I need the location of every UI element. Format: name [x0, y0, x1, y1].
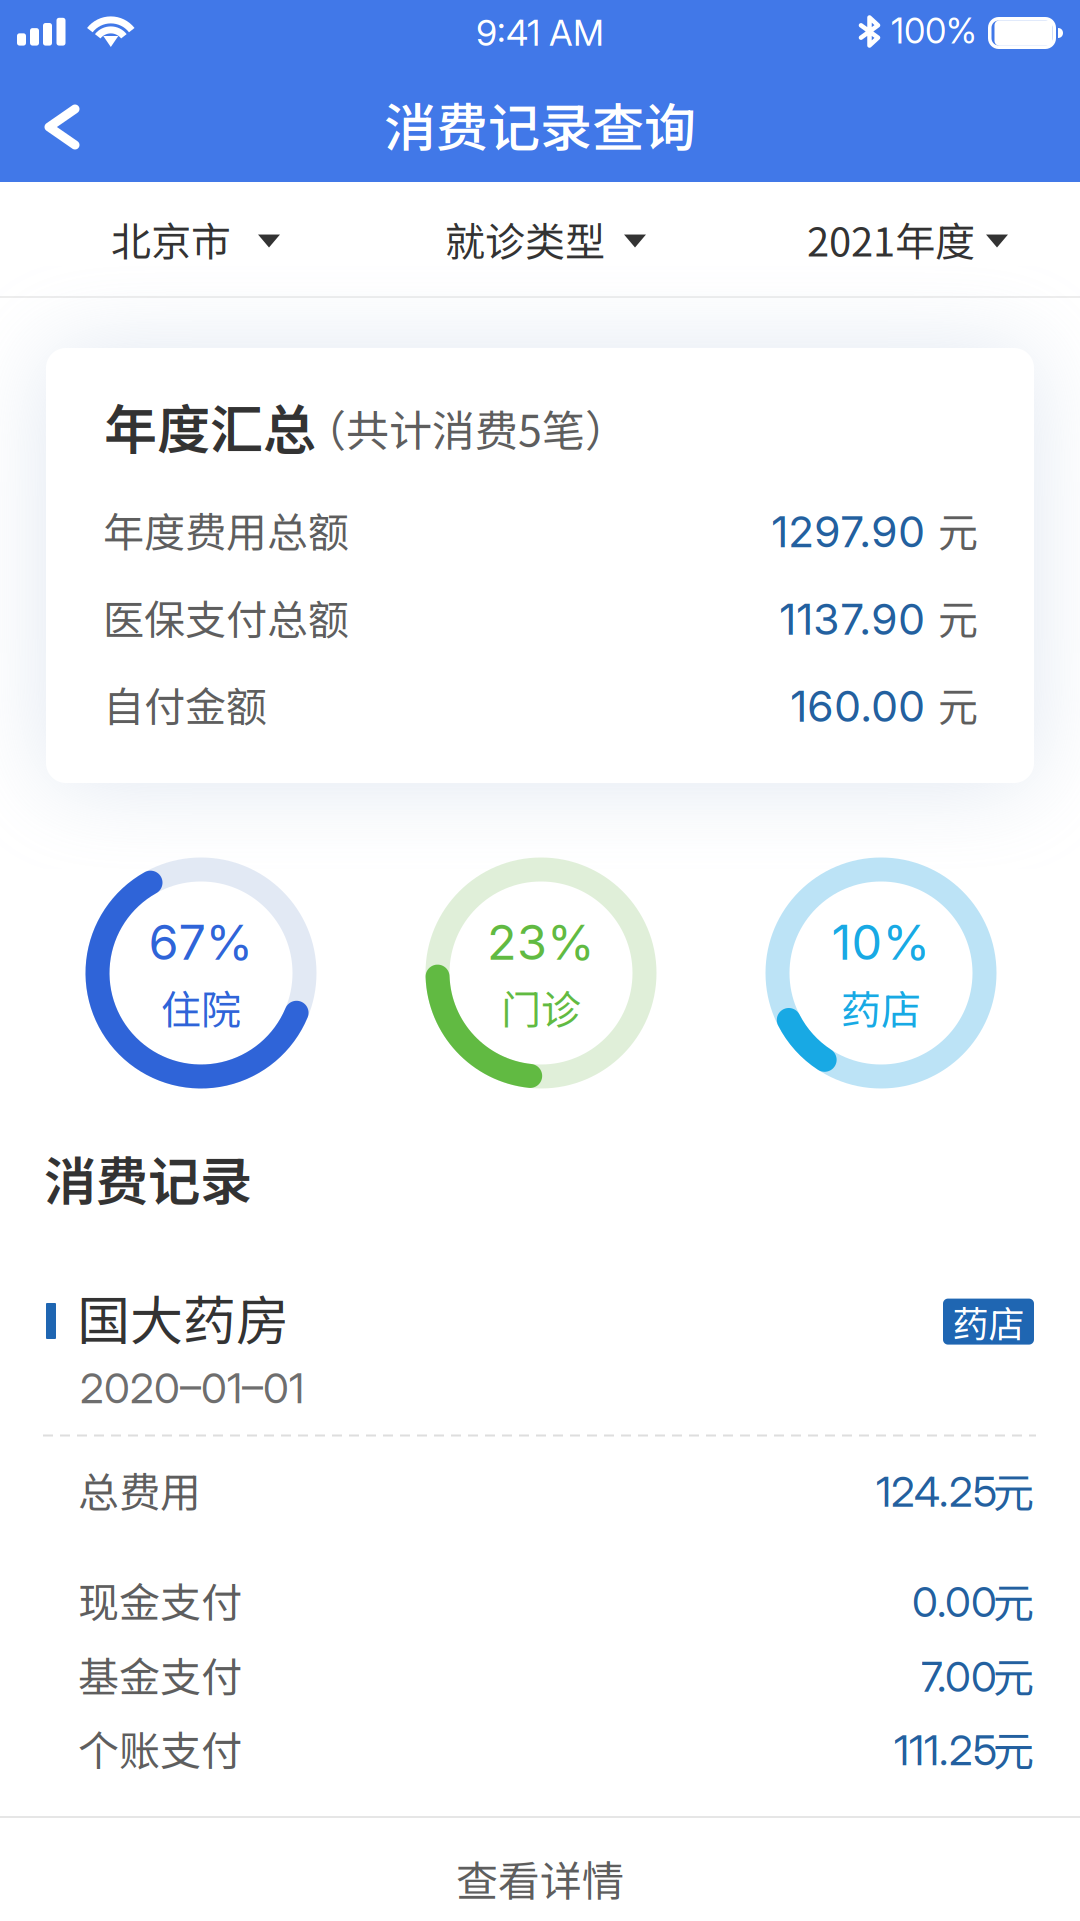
staticText: 元 [938, 588, 978, 646]
staticText: 元 [938, 675, 978, 733]
staticText: 自付金额 [103, 674, 267, 734]
staticText: 元 [993, 1460, 1034, 1519]
staticText: 医保支付总额 [103, 587, 349, 647]
button[interactable]: 返回 [0, 72, 124, 182]
staticText: 160.00 [790, 680, 925, 732]
staticText: 就诊类型 [445, 210, 605, 268]
staticText: 消费记录查询 [384, 86, 696, 162]
staticText: 年度汇总 [104, 388, 316, 464]
staticText: 基金支付 [78, 1645, 242, 1704]
staticText: 0.00 [912, 1576, 997, 1627]
staticText: 查看详情 [456, 1848, 624, 1909]
staticText: 元 [993, 1570, 1034, 1629]
staticText: 9:41 AM [476, 11, 604, 54]
staticText: 住院 [161, 978, 241, 1036]
staticText: 总费用 [78, 1460, 201, 1519]
button[interactable]: 查看详情 [0, 1827, 1080, 1921]
staticText: 年度费用总额 [103, 500, 349, 559]
staticText: 现金支付 [78, 1570, 242, 1629]
button[interactable]: 2021年度 [782, 182, 1022, 298]
staticText: 门诊 [501, 978, 581, 1036]
staticText: 124.25 [876, 1466, 997, 1517]
staticText: 100% [891, 10, 977, 52]
staticText: 元 [938, 500, 978, 558]
staticText: 元 [993, 1718, 1034, 1778]
staticText: 23% [487, 913, 595, 971]
staticText: 北京市 [111, 210, 231, 268]
staticText: 2020–01–01 [80, 1363, 304, 1413]
button[interactable]: 北京市 [90, 182, 290, 298]
staticText: 7.00 [921, 1651, 997, 1702]
staticText: 1137.90 [779, 593, 925, 645]
staticText: 元 [993, 1645, 1034, 1704]
staticText: 消费记录 [44, 1140, 252, 1216]
button[interactable]: 就诊类型 [420, 182, 660, 298]
staticText: 10% [831, 913, 930, 971]
staticText: 个账支付 [78, 1718, 242, 1778]
staticText: 国大药房 [77, 1279, 289, 1355]
staticText: 2021年度 [807, 210, 975, 268]
staticText: 67% [148, 913, 253, 971]
staticText: （共计消费5笔） [303, 397, 628, 459]
staticText: 111.25 [894, 1725, 997, 1775]
staticText: 1297.90 [771, 505, 925, 557]
staticText: 药店 [841, 978, 921, 1036]
staticText: 药店 [952, 1295, 1024, 1348]
